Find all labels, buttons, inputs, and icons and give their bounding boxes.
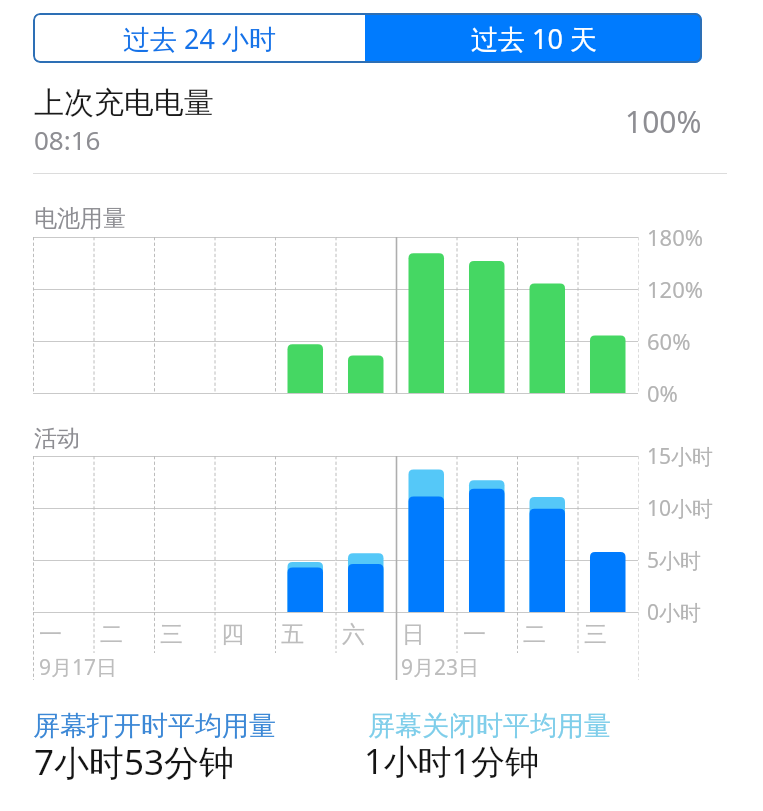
staticText: 5小时	[647, 546, 702, 575]
staticText: 屏幕打开时平均用量	[33, 709, 276, 743]
staticText: 屏幕关闭时平均用量	[368, 709, 611, 743]
staticText: 三	[584, 620, 607, 649]
staticText: 日	[402, 620, 425, 649]
staticText: 60%	[647, 326, 691, 356]
staticText: 1小时1分钟	[364, 738, 539, 784]
staticText: 0%	[647, 378, 678, 408]
staticText: 10小时	[647, 494, 714, 523]
staticText: 二	[100, 620, 123, 649]
staticText: 三	[160, 620, 183, 649]
button[interactable]: 屏幕打开时平均用量	[30, 705, 330, 785]
button[interactable]: 电池用量图表	[33, 237, 638, 393]
staticText: 二	[523, 620, 546, 649]
button[interactable]: 屏幕关闭时平均用量	[364, 705, 654, 785]
staticText: 180%	[647, 222, 704, 252]
staticText: 15小时	[647, 442, 714, 471]
staticText: 08:16	[34, 122, 101, 157]
button[interactable]: 过去 10 天	[365, 13, 702, 63]
staticText: 一	[463, 620, 486, 649]
staticText: 0小时	[647, 598, 702, 627]
button[interactable]: 过去 24 小时	[33, 13, 365, 63]
staticText: 9月23日	[401, 653, 480, 682]
staticText: 一	[39, 620, 62, 649]
staticText: 过去 10 天	[471, 20, 597, 57]
staticText: 9月17日	[39, 653, 118, 682]
staticText: 四	[221, 620, 244, 649]
staticText: 7小时53分钟	[34, 738, 235, 786]
staticText: 活动	[34, 424, 80, 453]
staticText: 过去 24 小时	[123, 20, 276, 57]
button[interactable]: 活动图表	[33, 456, 638, 612]
staticText: 100%	[625, 101, 702, 142]
staticText: 上次充电电量	[34, 84, 214, 122]
staticText: 电池用量	[34, 204, 126, 233]
staticText: 120%	[647, 274, 704, 304]
staticText: 五	[281, 620, 304, 649]
staticText: 六	[342, 620, 365, 649]
